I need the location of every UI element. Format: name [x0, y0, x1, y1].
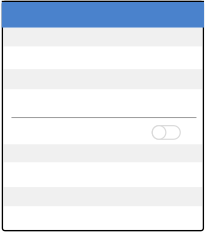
button[interactable]: Toggle: [152, 126, 180, 139]
